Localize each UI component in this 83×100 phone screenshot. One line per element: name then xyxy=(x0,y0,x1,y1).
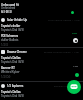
staticText: Browse Chrome Update • 12m xyxy=(44,50,80,53)
staticText: Unfocused fit xyxy=(1,3,19,7)
staticText: 4:40 xyxy=(72,31,77,34)
staticText: FDI Schemes xyxy=(1,34,19,38)
staticText: Whitted Kyber xyxy=(1,70,20,74)
staticText: Unfinished xyxy=(1,6,16,10)
button[interactable]: Start chat xyxy=(67,80,81,94)
staticText: Toyota's dollar xyxy=(1,24,21,28)
staticText: 1/2 (I) xyxy=(1,43,9,47)
staticText: Toyota's Dallas xyxy=(1,90,21,94)
staticText: Explorers Update • 1h xyxy=(54,84,80,87)
staticText: Toyota's Dial (8/3) xyxy=(1,60,24,64)
staticText: Solar Vehicle Update • Now xyxy=(48,18,80,21)
staticText: Solar Vehicle Up xyxy=(7,18,27,22)
button[interactable]: Solar Vehicle Up xyxy=(1,17,83,22)
staticText: 8:3 (8/3) xyxy=(1,10,12,14)
staticText: 1/2 Explorers xyxy=(7,84,24,88)
staticText: Toyota's Dallas xyxy=(1,56,21,60)
staticText: Toyota's Dial (8/3) xyxy=(1,94,24,98)
button[interactable]: 1/2 Explorers xyxy=(1,83,83,88)
button[interactable]: Browse Chrome xyxy=(1,49,83,54)
staticText: duller Ballots xyxy=(1,38,19,42)
staticText: Browse Chrome xyxy=(7,50,27,54)
staticText: Banner RT xyxy=(1,66,15,70)
staticText: 1/2 (Dil) xyxy=(1,75,11,79)
staticText: Toyota's Dial (8/3) xyxy=(1,28,24,32)
staticText: 1:40 xyxy=(73,64,78,67)
